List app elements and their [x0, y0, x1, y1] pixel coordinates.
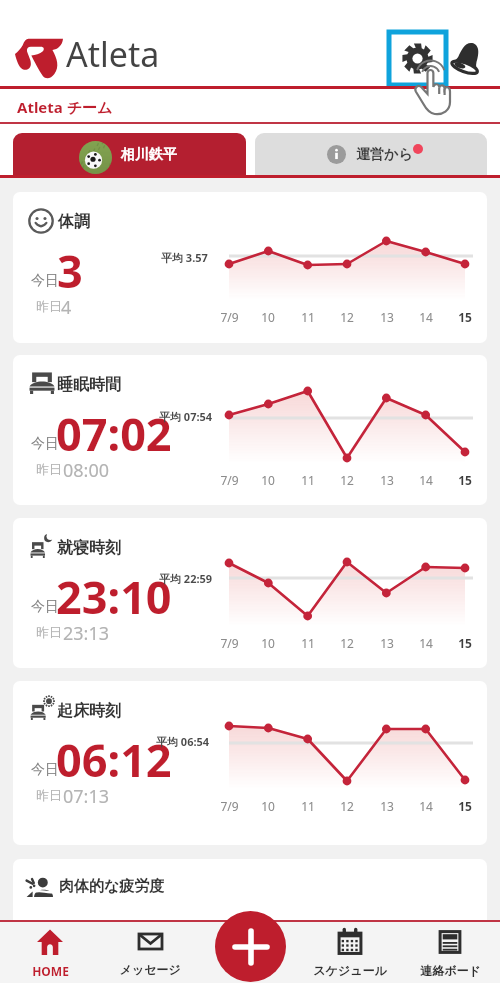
button[interactable]: 肉体的な疲労度: [13, 859, 487, 939]
staticText: 07:02: [56, 403, 172, 464]
staticText: 昨日: [36, 461, 62, 477]
staticText: メッセージ: [119, 962, 181, 977]
staticText: 11: [301, 635, 315, 651]
staticText: 今日: [31, 598, 59, 616]
staticText: 平均 07:54: [159, 409, 213, 424]
button[interactable]: 相川鉄平: [13, 133, 246, 175]
staticText: 10: [261, 472, 275, 488]
staticText: 11: [301, 309, 315, 325]
staticText: 13: [380, 635, 394, 651]
button[interactable]: Add: [215, 911, 286, 982]
staticText: 11: [301, 798, 315, 814]
staticText: 12: [340, 635, 354, 651]
staticText: 23:13: [63, 621, 110, 646]
staticText: Atleta: [66, 31, 160, 77]
staticText: 起床時刻: [57, 701, 121, 721]
staticText: 平均 22:59: [159, 571, 213, 586]
staticText: 15: [458, 472, 472, 488]
staticText: 平均 3.57: [161, 250, 208, 265]
staticText: 4: [61, 295, 72, 320]
staticText: 昨日: [36, 624, 62, 640]
button[interactable]: スケジュール: [300, 921, 400, 993]
staticText: 06:12: [56, 729, 172, 790]
staticText: 15: [458, 309, 472, 325]
staticText: 相川鉄平: [121, 146, 177, 164]
button[interactable]: 睡眠時間: [13, 355, 487, 505]
staticText: 体調: [58, 212, 90, 232]
staticText: 14: [419, 635, 433, 651]
button[interactable]: 体調: [13, 192, 487, 343]
staticText: 14: [419, 798, 433, 814]
staticText: Atleta チーム: [17, 97, 113, 117]
staticText: 10: [261, 798, 275, 814]
staticText: 7/9: [220, 309, 239, 325]
staticText: HOME: [32, 963, 69, 979]
staticText: 12: [340, 472, 354, 488]
staticText: 平均 06:54: [156, 734, 210, 749]
staticText: 10: [261, 635, 275, 651]
staticText: 11: [301, 472, 315, 488]
staticText: 12: [340, 798, 354, 814]
staticText: 12: [340, 309, 354, 325]
button[interactable]: Settings: [389, 32, 446, 85]
staticText: 7/9: [220, 798, 239, 814]
staticText: 15: [458, 635, 472, 651]
staticText: 今日: [31, 272, 59, 290]
staticText: 14: [419, 472, 433, 488]
staticText: 13: [380, 472, 394, 488]
button[interactable]: 起床時刻: [13, 681, 487, 845]
button[interactable]: メッセージ: [100, 921, 200, 993]
staticText: 運営から: [356, 146, 413, 164]
staticText: 07:13: [63, 784, 110, 809]
button[interactable]: 就寝時刻: [13, 518, 487, 668]
button[interactable]: Notifications: [452, 41, 484, 75]
staticText: スケジュール: [313, 963, 387, 978]
staticText: 肉体的な疲労度: [59, 877, 165, 896]
staticText: 今日: [31, 761, 59, 779]
staticText: 23:10: [56, 566, 172, 627]
staticText: 15: [458, 798, 472, 814]
staticText: 昨日: [36, 787, 62, 803]
staticText: 昨日: [36, 298, 62, 314]
staticText: 7/9: [220, 472, 239, 488]
staticText: 就寝時刻: [57, 538, 121, 558]
staticText: 今日: [31, 435, 59, 453]
staticText: 7/9: [220, 635, 239, 651]
staticText: 08:00: [63, 458, 110, 483]
button[interactable]: 連絡ボード: [400, 921, 500, 993]
staticText: 13: [380, 309, 394, 325]
staticText: 3: [57, 240, 83, 301]
staticText: 連絡ボード: [420, 963, 481, 978]
staticText: 10: [261, 309, 275, 325]
staticText: 睡眠時間: [57, 375, 121, 395]
staticText: 14: [419, 309, 433, 325]
button[interactable]: 運営から: [255, 133, 487, 175]
staticText: 13: [380, 798, 394, 814]
button[interactable]: HOME: [0, 921, 100, 993]
